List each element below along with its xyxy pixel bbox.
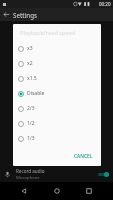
staticText: 1/3 <box>27 135 35 142</box>
button[interactable]: Back <box>0 8 13 21</box>
staticText: 00:20 <box>99 1 111 7</box>
button[interactable]: Record audio <box>0 166 113 182</box>
staticText: Disable <box>27 90 45 97</box>
button[interactable]: Recents <box>80 182 98 200</box>
button[interactable]: x1.5 <box>13 71 101 86</box>
button[interactable]: 2/3 <box>13 101 101 116</box>
button[interactable]: 1/3 <box>13 131 101 146</box>
button[interactable]: x2 <box>13 56 101 71</box>
staticText: 1/2 <box>27 120 35 127</box>
staticText: Playback/read speed <box>20 29 76 37</box>
button[interactable]: 1/2 <box>13 116 101 131</box>
staticText: x1.5 <box>27 75 37 82</box>
button[interactable]: x3 <box>13 41 101 56</box>
staticText: x2 <box>27 60 33 67</box>
staticText: 2/3 <box>27 105 35 112</box>
button[interactable]: Disable <box>13 86 101 101</box>
staticText: Record audio <box>16 168 45 174</box>
staticText: Microphone <box>16 175 40 181</box>
button[interactable]: Back <box>15 182 33 200</box>
button[interactable]: CANCEL <box>71 151 96 162</box>
staticText: x3 <box>27 45 33 52</box>
button[interactable]: Home <box>48 182 66 200</box>
staticText: Settings <box>13 11 38 19</box>
staticText: CANCEL <box>74 153 93 160</box>
button[interactable] <box>97 171 109 178</box>
